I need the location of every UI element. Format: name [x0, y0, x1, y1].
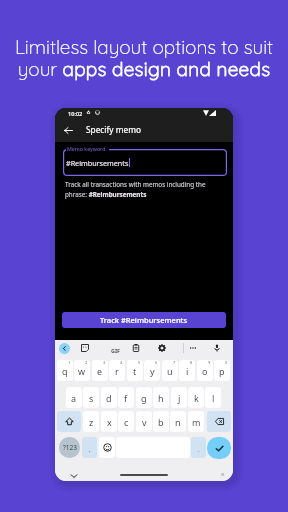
staticText: Memo keyword: [67, 145, 106, 152]
button[interactable]: .: [191, 437, 206, 458]
staticText: v: [142, 416, 147, 428]
staticText: c: [124, 416, 129, 428]
staticText: h: [158, 392, 164, 404]
staticText: x: [107, 416, 112, 428]
staticText: 2: [85, 360, 88, 365]
staticText: n: [175, 416, 181, 428]
staticText: i: [186, 365, 189, 377]
staticText: 3: [103, 360, 106, 365]
staticText: p: [219, 365, 225, 377]
button[interactable]: [99, 437, 115, 458]
button[interactable]: mic: [209, 340, 225, 356]
staticText: Track all transactions with memos includ…: [65, 180, 208, 199]
button[interactable]: ?123: [59, 437, 80, 458]
button[interactable]: gear: [154, 340, 170, 356]
staticText: l: [212, 392, 215, 404]
staticText: ,: [89, 446, 91, 454]
button[interactable]: d: [101, 387, 117, 408]
staticText: 4: [120, 360, 123, 365]
button[interactable]: h: [153, 387, 169, 408]
button[interactable]: [207, 437, 231, 459]
staticText: 1: [68, 360, 71, 365]
button[interactable]: clipboard: [128, 340, 144, 356]
button[interactable]: dots: [185, 340, 201, 356]
staticText: GIF: [111, 347, 121, 354]
staticText: 5: [138, 360, 141, 365]
button[interactable]: o: [197, 360, 213, 381]
staticText: m: [192, 416, 201, 428]
staticText: 0: [225, 360, 228, 365]
staticText: 6: [155, 360, 158, 365]
staticText: 9: [208, 360, 211, 365]
button[interactable]: x: [101, 411, 117, 432]
staticText: 10:02: [68, 110, 83, 118]
staticText: a: [71, 392, 77, 404]
staticText: f: [124, 392, 128, 404]
button[interactable]: n: [170, 411, 186, 432]
button[interactable]: l: [205, 387, 221, 408]
button[interactable]: Collapse: [59, 343, 70, 354]
button[interactable]: y: [144, 360, 160, 381]
button[interactable]: Back: [60, 122, 76, 138]
staticText: s: [89, 392, 94, 404]
staticText: r: [115, 365, 119, 377]
button[interactable]: j: [171, 387, 187, 408]
button[interactable]: ,: [82, 437, 97, 458]
button[interactable]: [207, 411, 231, 432]
staticText: z: [89, 416, 94, 428]
button[interactable]: b: [153, 411, 169, 432]
staticText: ?123: [63, 443, 77, 452]
staticText: .: [198, 446, 200, 454]
button[interactable]: q: [57, 360, 73, 381]
staticText: w: [78, 365, 86, 377]
button[interactable]: Track #Reimbursements: [62, 312, 226, 328]
button[interactable]: v: [136, 411, 152, 432]
staticText: #Reimbursements: [66, 158, 129, 168]
staticText: b: [158, 416, 164, 428]
staticText: k: [194, 392, 199, 404]
button[interactable]: i: [179, 360, 195, 381]
staticText: 8: [190, 360, 193, 365]
button[interactable]: t: [127, 360, 143, 381]
button[interactable]: f: [118, 387, 134, 408]
staticText: Limitless layout options to suit: [0, 35, 288, 59]
button[interactable]: k: [188, 387, 204, 408]
button[interactable]: c: [118, 411, 134, 432]
button[interactable]: w: [74, 360, 90, 381]
button[interactable]: p: [214, 360, 230, 381]
button[interactable]: Hide keyboard: [66, 469, 81, 481]
staticText: Track #Reimbursements: [100, 315, 188, 325]
button[interactable]: m: [188, 411, 204, 432]
button[interactable]: [57, 411, 81, 432]
staticText: o: [202, 365, 208, 377]
staticText: Specify memo: [86, 124, 141, 135]
staticText: t: [133, 365, 137, 377]
staticText: your apps design and needs: [0, 57, 288, 81]
button[interactable]: GIF: [108, 342, 124, 358]
button[interactable]: z: [83, 411, 99, 432]
staticText: q: [62, 365, 68, 377]
button[interactable]: a: [66, 387, 82, 408]
staticText: y: [150, 365, 155, 377]
button[interactable]: sticker: [77, 340, 93, 356]
staticText: u: [167, 365, 173, 377]
staticText: ☰: [221, 472, 225, 477]
staticText: 7: [173, 360, 176, 365]
staticText: g: [141, 392, 147, 404]
staticText: e: [97, 365, 103, 377]
staticText: j: [178, 392, 181, 404]
button[interactable]: e: [92, 360, 108, 381]
button[interactable]: r: [109, 360, 125, 381]
button[interactable]: g: [136, 387, 152, 408]
button[interactable]: s: [83, 387, 99, 408]
button[interactable]: u: [162, 360, 178, 381]
staticText: d: [106, 392, 112, 404]
